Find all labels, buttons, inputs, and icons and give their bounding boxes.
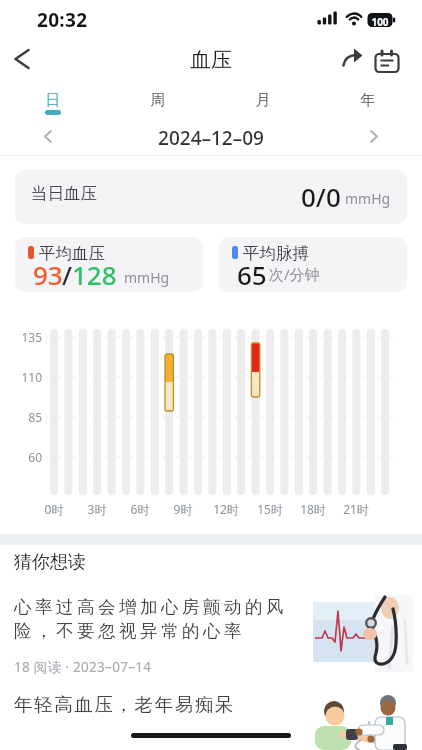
staticText: 猜你想读 [14, 551, 86, 574]
staticText: 6时 [120, 501, 160, 517]
staticText: 128 [72, 257, 117, 292]
button[interactable] [316, 84, 421, 120]
staticText: / [62, 257, 73, 292]
staticText: 2024–12–09 [136, 125, 286, 151]
staticText: 9时 [163, 501, 203, 517]
staticText: 心率过高会增加心房颤动的风险，不要忽视异常的心率 [14, 596, 296, 642]
staticText: mmHg [345, 189, 391, 208]
staticText: 93 [33, 257, 63, 292]
button[interactable] [0, 685, 422, 750]
staticText: 60 [10, 449, 42, 465]
staticText: 次/分钟 [269, 264, 320, 284]
button[interactable] [348, 120, 392, 154]
staticText: 周 [138, 91, 178, 110]
button[interactable]: 平均脉搏 [219, 237, 407, 292]
staticText: 年 [348, 91, 388, 110]
staticText: 0时 [34, 501, 74, 517]
staticText: mmHg [124, 268, 170, 287]
staticText: 110 [10, 369, 42, 385]
button[interactable] [6, 39, 44, 79]
button[interactable]: 平均血压 [15, 237, 203, 292]
staticText: 100 [368, 15, 392, 29]
staticText: 0/0 [301, 179, 341, 214]
button[interactable] [370, 42, 406, 76]
button[interactable]: 当日血压 [15, 170, 407, 224]
staticText: 135 [10, 329, 42, 345]
button[interactable] [0, 590, 422, 723]
staticText: 65 [237, 257, 267, 292]
staticText: 3时 [77, 501, 117, 517]
button[interactable] [336, 42, 370, 76]
staticText: 平均脉搏 [243, 243, 309, 264]
staticText: 平均血压 [39, 243, 105, 264]
staticText: 血压 [161, 47, 261, 73]
staticText: 15时 [250, 501, 290, 517]
staticText: 18时 [293, 501, 333, 517]
staticText: 年轻高血压，老年易痴呆 [14, 693, 236, 716]
button[interactable] [1, 84, 106, 120]
staticText: 20:32 [37, 7, 88, 33]
button[interactable] [211, 84, 316, 120]
staticText: 日 [33, 91, 73, 110]
button[interactable] [30, 120, 74, 154]
button[interactable] [106, 84, 211, 120]
staticText: 18 阅读 · 2023–07–14 [14, 658, 152, 676]
staticText: 当日血压 [31, 183, 97, 204]
staticText: 月 [243, 91, 283, 110]
staticText: 85 [10, 409, 42, 425]
staticText: 21时 [336, 501, 376, 517]
staticText: 12时 [206, 501, 246, 517]
